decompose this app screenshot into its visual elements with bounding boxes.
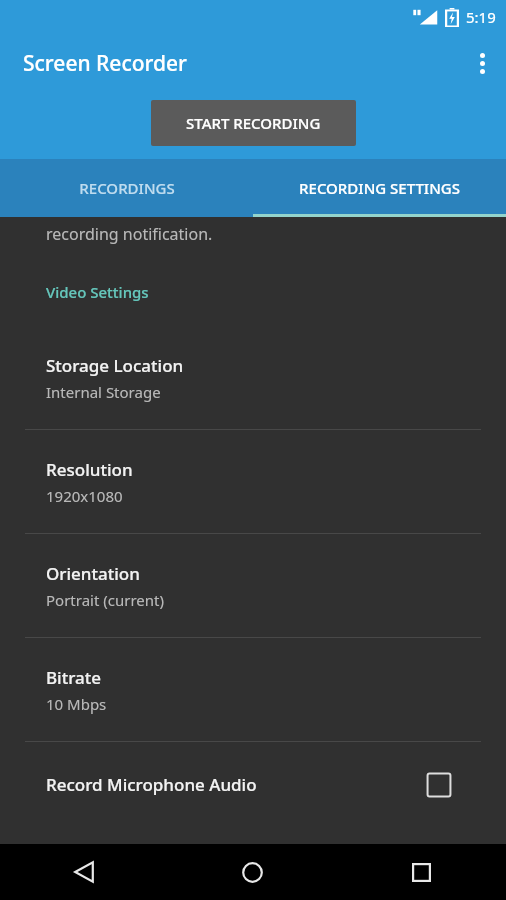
button[interactable]: Orientation [0, 534, 506, 637]
staticText: 1920x1080 [46, 486, 123, 506]
staticText: Orientation [46, 562, 140, 585]
button[interactable]: Bitrate [0, 638, 506, 741]
button[interactable]: RECORDING SETTINGS [253, 159, 506, 217]
staticText: Video Settings [46, 282, 149, 302]
staticText: recording notification. [46, 223, 213, 245]
staticText: 5:19 [466, 7, 496, 27]
staticText: 10 Mbps [46, 694, 107, 714]
staticText: Portrait (current) [46, 590, 164, 610]
button[interactable]: RECORDINGS [0, 159, 253, 217]
button[interactable]: START RECORDING [151, 100, 356, 146]
staticText: Storage Location [46, 354, 184, 377]
button[interactable]: Recent apps [337, 844, 506, 900]
staticText: Resolution [46, 458, 133, 481]
staticText: START RECORDING [186, 113, 321, 133]
staticText: Record Microphone Audio [46, 773, 426, 796]
staticText: RECORDING SETTINGS [299, 178, 460, 198]
staticText: RECORDINGS [79, 178, 175, 198]
button[interactable]: More options [458, 39, 506, 87]
staticText: Internal Storage [46, 382, 161, 402]
button[interactable]: Storage Location [0, 326, 506, 429]
staticText: Screen Recorder [23, 49, 187, 78]
staticText: Bitrate [46, 666, 102, 689]
button[interactable]: Resolution [0, 430, 506, 533]
button[interactable]: Home [168, 844, 337, 900]
button[interactable]: Back [0, 844, 168, 900]
button[interactable]: Record Microphone Audio [0, 742, 506, 827]
